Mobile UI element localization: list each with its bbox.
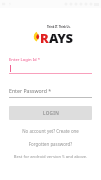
staticText: LOGIN (43, 110, 59, 116)
staticText: R (40, 29, 49, 47)
staticText: Enter Login Id * (9, 57, 41, 63)
staticText: AYS (49, 29, 73, 47)
staticText: Think IT. Think Us. (47, 25, 71, 29)
button[interactable]: Forgotten password? (0, 141, 101, 147)
button[interactable]: Enter Login Id * (9, 57, 92, 74)
button[interactable]: Enter Password * (9, 87, 92, 98)
staticText: Forgotten password? (0, 141, 101, 147)
button[interactable]: LOGIN (9, 106, 92, 120)
staticText: Best for android version 5 and above. (0, 154, 101, 160)
staticText: No account yet? Create one (0, 128, 101, 134)
staticText: Enter Password * (9, 87, 52, 94)
button[interactable]: No account yet? Create one (0, 128, 101, 134)
